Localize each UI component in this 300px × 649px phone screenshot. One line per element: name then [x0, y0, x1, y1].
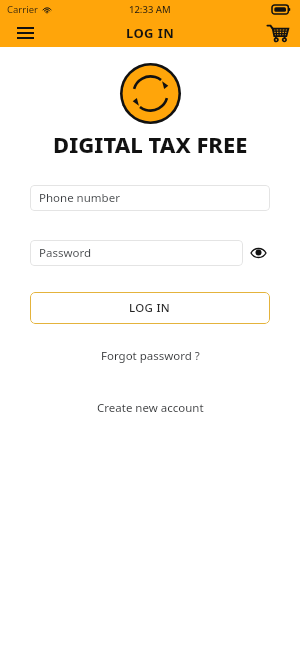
staticText: Carrier [7, 3, 38, 16]
button[interactable]: LOG IN [30, 292, 270, 324]
button[interactable]: Show password [243, 238, 273, 268]
button[interactable]: Phone number [30, 185, 270, 211]
staticText: Forgot password ? [101, 348, 200, 364]
staticText: DIGITAL TAX FREE [53, 129, 248, 159]
staticText: 12:33 AM [129, 3, 171, 16]
staticText: Create new account [97, 400, 204, 416]
button[interactable]: Forgot password ? [91, 345, 210, 367]
button[interactable]: Password [30, 240, 243, 266]
staticText: LOG IN [126, 24, 175, 42]
staticText: LOG IN [129, 300, 171, 316]
staticText: Password [39, 245, 92, 261]
button[interactable]: Menu [12, 20, 38, 46]
button[interactable]: Create new account [87, 397, 214, 419]
staticText: Phone number [39, 190, 120, 206]
button[interactable]: Cart [264, 19, 292, 47]
